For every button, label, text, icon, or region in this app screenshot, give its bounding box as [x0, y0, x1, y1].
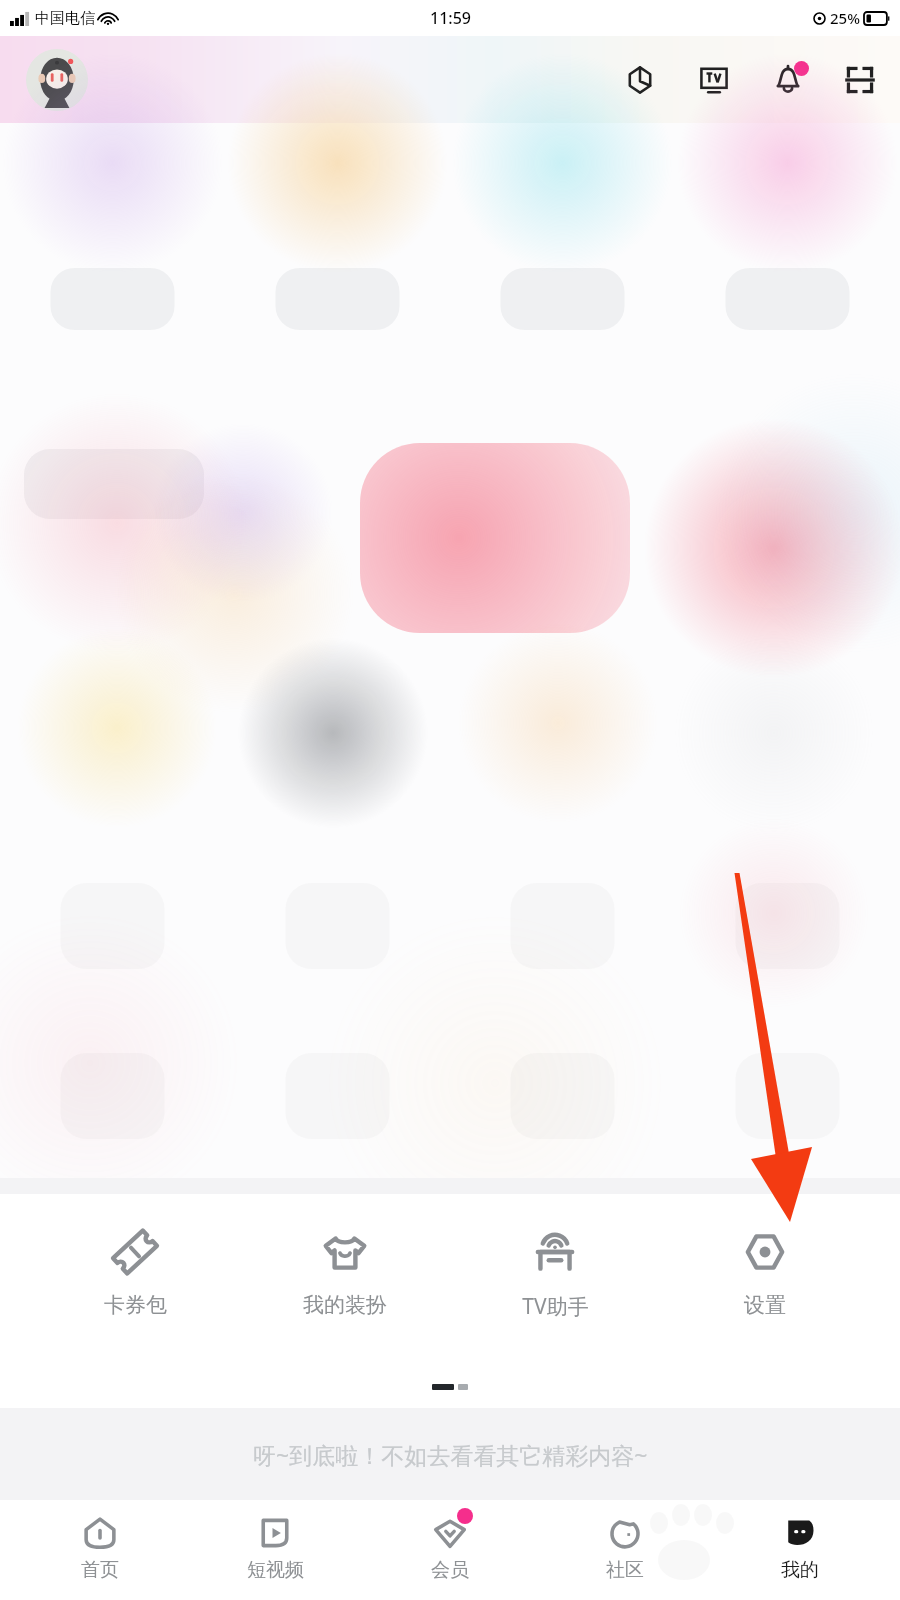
button[interactable]: TV助手: [480, 1222, 630, 1325]
button[interactable]: 短视频: [200, 1512, 350, 1582]
button[interactable]: 首页: [25, 1512, 175, 1582]
staticText: 设置: [744, 1292, 786, 1318]
staticText: 25%: [830, 8, 860, 28]
button[interactable]: 会员: [375, 1512, 525, 1582]
button[interactable]: Creator center: [618, 58, 662, 102]
staticText: 呀~到底啦！不如去看看其它精彩内容~: [253, 1439, 648, 1470]
button[interactable]: 设置: [690, 1222, 840, 1322]
button[interactable]: 我的装扮: [270, 1222, 420, 1322]
staticText: TV助手: [522, 1292, 589, 1321]
button[interactable]: 社区: [550, 1512, 700, 1582]
staticText: 卡券包: [104, 1292, 167, 1318]
staticText: 11:59: [430, 7, 471, 29]
staticText: 我的装扮: [303, 1292, 387, 1318]
staticText: 短视频: [247, 1558, 304, 1582]
staticText: 我的: [781, 1558, 819, 1582]
staticText: 会员: [431, 1558, 469, 1582]
staticText: 首页: [81, 1558, 119, 1582]
button[interactable]: Profile avatar: [26, 49, 88, 111]
staticText: 中国电信: [35, 9, 95, 28]
button[interactable]: Notifications: [766, 58, 810, 102]
button[interactable]: TV: [692, 58, 736, 102]
button[interactable]: 卡券包: [60, 1222, 210, 1322]
button[interactable]: 我的: [725, 1512, 875, 1582]
button[interactable]: Scan: [838, 58, 882, 102]
staticText: 社区: [606, 1558, 644, 1582]
